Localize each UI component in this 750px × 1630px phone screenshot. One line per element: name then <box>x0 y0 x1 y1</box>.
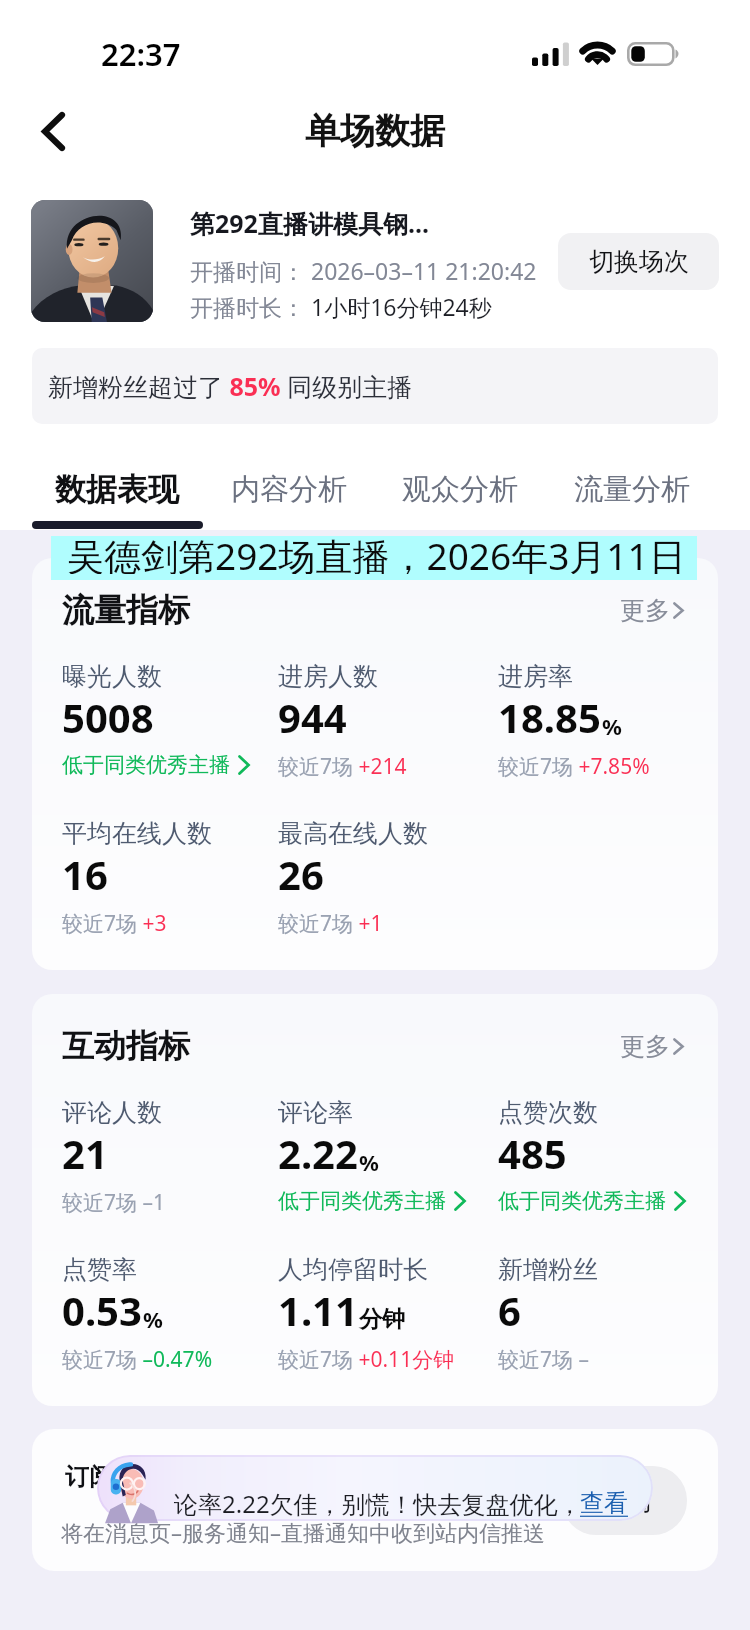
staticText: 评论人数 <box>62 1097 162 1128</box>
button[interactable]: 新增粉丝超过了 85% 同级别主播 <box>32 348 718 424</box>
staticText: 开播时间： 2026–03–11 21:20:42 <box>190 255 537 286</box>
staticText: 吴德剑第292场直播，2026年3月11日 <box>67 530 686 574</box>
staticText: 数据表现 <box>55 470 179 509</box>
staticText: 22:37 <box>101 33 181 75</box>
staticText: 6 <box>498 1283 521 1337</box>
staticText: 互动指标 <box>62 1026 190 1066</box>
button[interactable]: 切换场次 <box>558 233 719 290</box>
staticText: % <box>143 1304 163 1334</box>
button[interactable]: 更多 <box>620 1031 684 1062</box>
button[interactable]: 数据表现 <box>47 455 187 523</box>
staticText: 人均停留时长 <box>278 1254 428 1285</box>
staticText: 更多 <box>620 1031 670 1062</box>
staticText: 订阅 <box>65 1462 113 1492</box>
staticText: 流量分析 <box>574 471 690 508</box>
staticText: 低于同类优秀主播 <box>278 1188 446 1214</box>
button[interactable]: Back <box>18 96 88 166</box>
staticText: 21 <box>62 1126 108 1180</box>
staticText: 最高在线人数 <box>278 818 428 849</box>
staticText: 观众分析 <box>402 471 518 508</box>
staticText: 较近7场 +3 <box>62 909 167 938</box>
staticText: 0.53 <box>62 1283 142 1337</box>
staticText: 评论率 <box>278 1097 353 1128</box>
staticText: % <box>359 1147 379 1177</box>
button[interactable]: 论率2.22欠佳，别慌！快去复盘优化， <box>97 1455 653 1521</box>
staticText: 较近7场 +214 <box>278 752 407 781</box>
button[interactable]: 观众分析 <box>394 455 526 523</box>
staticText: 26 <box>278 847 324 901</box>
staticText: 进房率 <box>498 661 573 692</box>
staticText: 将在消息页–服务通知–直播通知中收到站内信推送 <box>61 1517 546 1547</box>
staticText: 进房人数 <box>278 661 378 692</box>
button[interactable] <box>31 200 153 322</box>
button[interactable]: 更多 <box>620 595 684 626</box>
staticText: 开播时长： 1小时16分钟24秒 <box>190 291 492 322</box>
staticText: 低于同类优秀主播 <box>62 752 230 778</box>
staticText: 1.11 <box>278 1283 358 1337</box>
staticText: 较近7场 –0.47% <box>62 1345 213 1374</box>
button[interactable]: 低于同类优秀主播 <box>62 752 250 778</box>
staticText: 较近7场 +0.11分钟 <box>278 1345 455 1374</box>
staticText: 曝光人数 <box>62 661 162 692</box>
staticText: 单场数据 <box>305 109 445 153</box>
staticText: 平均在线人数 <box>62 818 212 849</box>
staticText: % <box>602 711 622 741</box>
button[interactable]: 流量分析 <box>566 455 698 523</box>
staticText: 分钟 <box>359 1305 405 1334</box>
staticText: 新增粉丝 <box>498 1254 598 1285</box>
staticText: 查看 <box>580 1488 628 1518</box>
staticText: 论率2.22欠佳，别慌！快去复盘优化， <box>174 1487 582 1520</box>
staticText: 485 <box>498 1126 567 1180</box>
staticText: 较近7场 +7.85% <box>498 752 650 781</box>
button[interactable]: 订阅 <box>562 1466 687 1535</box>
button[interactable]: 低于同类优秀主播 <box>498 1188 686 1214</box>
staticText: 较近7场 +1 <box>278 909 383 938</box>
staticText: 16 <box>62 847 108 901</box>
staticText: 点赞次数 <box>498 1097 598 1128</box>
staticText: 流量指标 <box>62 590 190 630</box>
staticText: 新增粉丝超过了 85% 同级别主播 <box>48 369 413 403</box>
staticText: 较近7场 – <box>498 1345 589 1374</box>
staticText: 点赞率 <box>62 1254 137 1285</box>
staticText: 2.22 <box>278 1126 358 1180</box>
staticText: 订阅 <box>598 1484 652 1518</box>
staticText: 较近7场 –1 <box>62 1188 165 1217</box>
staticText: 低于同类优秀主播 <box>498 1188 666 1214</box>
staticText: 5008 <box>62 690 154 744</box>
staticText: 第292直播讲模具钢... <box>190 206 429 240</box>
staticText: 切换场次 <box>589 246 689 277</box>
button[interactable]: 内容分析 <box>223 455 355 523</box>
staticText: 内容分析 <box>231 471 347 508</box>
staticText: 944 <box>278 690 347 744</box>
button[interactable]: 低于同类优秀主播 <box>278 1188 466 1214</box>
staticText: 更多 <box>620 595 670 626</box>
staticText: 18.85 <box>498 690 601 744</box>
